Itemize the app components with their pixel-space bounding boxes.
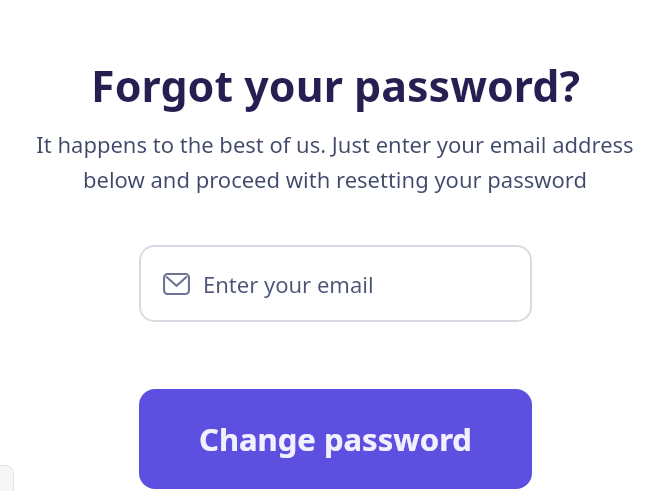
staticText: Forgot your password? (91, 56, 580, 115)
staticText: Enter your email (203, 269, 374, 299)
other: Email (163, 273, 190, 295)
button[interactable]: Change password (139, 389, 532, 489)
staticText: Change password (199, 418, 472, 460)
button[interactable]: Email (139, 245, 532, 322)
staticText: It happens to the best of us. Just enter… (6, 129, 664, 195)
